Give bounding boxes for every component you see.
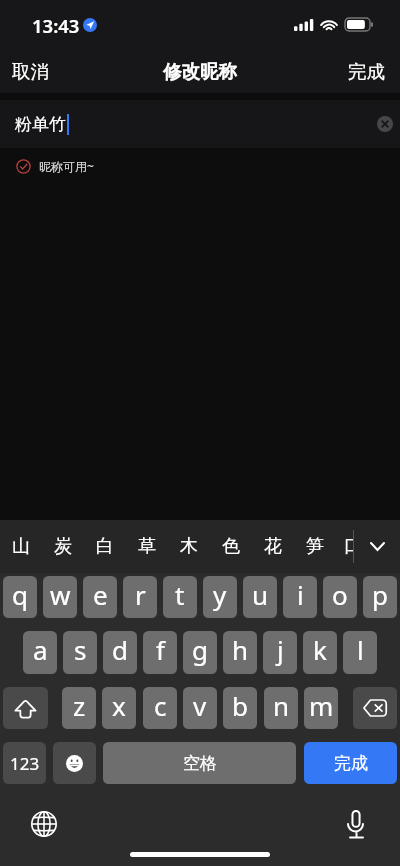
button[interactable]: r xyxy=(123,576,157,618)
staticText: t xyxy=(175,577,185,612)
button[interactable]: Shift xyxy=(3,687,48,729)
button[interactable]: q xyxy=(3,576,37,618)
button[interactable]: 花 xyxy=(252,520,294,573)
button[interactable]: 123 xyxy=(3,742,46,784)
button[interactable]: p xyxy=(363,576,397,618)
staticText: 色 xyxy=(222,535,240,558)
staticText: w xyxy=(50,577,71,612)
staticText: 口 xyxy=(344,535,353,558)
button[interactable]: Clear text xyxy=(377,116,393,132)
button[interactable]: Backspace xyxy=(353,687,397,729)
button[interactable]: k xyxy=(303,631,337,674)
button[interactable]: 空格 xyxy=(103,742,296,784)
staticText: 笋 xyxy=(306,535,324,558)
staticText: h xyxy=(232,632,249,667)
staticText: c xyxy=(154,688,167,723)
staticText: 木 xyxy=(180,535,198,558)
button[interactable]: h xyxy=(223,631,257,674)
button[interactable]: Voice input xyxy=(347,810,366,839)
staticText: 完成 xyxy=(348,60,385,83)
staticText: 花 xyxy=(264,535,282,558)
button[interactable]: d xyxy=(103,631,137,674)
button[interactable]: 炭 xyxy=(42,520,84,573)
staticText: z xyxy=(73,688,86,723)
staticText: 完成 xyxy=(334,753,368,774)
button[interactable]: 色 xyxy=(210,520,252,573)
button[interactable]: Switch keyboard language xyxy=(31,811,57,837)
button[interactable]: x xyxy=(102,687,136,729)
staticText: 昵称可用~ xyxy=(39,158,94,174)
staticText: 13:43 xyxy=(32,13,80,38)
button[interactable]: 白 xyxy=(84,520,126,573)
staticText: 炭 xyxy=(54,535,72,558)
staticText: r xyxy=(135,577,146,612)
button[interactable]: u xyxy=(243,576,277,618)
button[interactable]: g xyxy=(183,631,217,674)
button[interactable]: Expand candidates xyxy=(354,520,400,573)
button[interactable]: 口 xyxy=(336,520,353,573)
staticText: j xyxy=(277,632,284,667)
staticText: 白 xyxy=(96,535,114,558)
staticText: 空格 xyxy=(183,753,217,774)
button[interactable]: 取消 xyxy=(0,48,61,93)
staticText: g xyxy=(192,632,208,667)
staticText: q xyxy=(12,577,28,612)
staticText: n xyxy=(273,688,290,723)
button[interactable]: i xyxy=(283,576,317,618)
staticText: u xyxy=(252,577,269,612)
staticText: p xyxy=(372,577,388,612)
button[interactable]: t xyxy=(163,576,197,618)
button[interactable]: w xyxy=(43,576,77,618)
button[interactable]: 草 xyxy=(126,520,168,573)
button[interactable]: 完成 xyxy=(304,742,397,784)
staticText: k xyxy=(313,632,327,667)
button[interactable]: o xyxy=(323,576,357,618)
button[interactable]: 木 xyxy=(168,520,210,573)
button[interactable]: j xyxy=(263,631,297,674)
staticText: 123 xyxy=(10,752,40,775)
staticText: a xyxy=(33,632,48,667)
button[interactable]: n xyxy=(264,687,298,729)
staticText: b xyxy=(232,688,248,723)
staticText: i xyxy=(297,577,304,612)
staticText: 修改昵称 xyxy=(163,60,237,83)
staticText: 取消 xyxy=(12,60,49,83)
button[interactable]: 笋 xyxy=(294,520,336,573)
staticText: d xyxy=(112,632,128,667)
staticText: v xyxy=(193,688,207,723)
button[interactable]: e xyxy=(83,576,117,618)
button[interactable]: l xyxy=(343,631,377,674)
button[interactable]: b xyxy=(223,687,257,729)
button[interactable]: y xyxy=(203,576,237,618)
staticText: x xyxy=(112,688,126,723)
staticText: s xyxy=(74,632,87,667)
button[interactable]: 山 xyxy=(0,520,42,573)
staticText: f xyxy=(156,632,165,667)
button[interactable]: m xyxy=(304,687,338,729)
button[interactable]: z xyxy=(62,687,96,729)
button[interactable]: v xyxy=(183,687,217,729)
staticText: 草 xyxy=(138,535,156,558)
button[interactable]: f xyxy=(143,631,177,674)
staticText: 山 xyxy=(12,535,30,558)
button[interactable]: s xyxy=(63,631,97,674)
button[interactable]: 完成 xyxy=(333,48,400,93)
button[interactable]: Emoji keyboard xyxy=(53,742,96,784)
staticText: 粉单竹 xyxy=(15,114,66,135)
staticText: y xyxy=(213,577,227,612)
staticText: o xyxy=(332,577,348,612)
staticText: l xyxy=(357,632,364,667)
button[interactable]: a xyxy=(23,631,57,674)
staticText: e xyxy=(93,577,108,612)
button[interactable]: c xyxy=(143,687,177,729)
staticText: m xyxy=(309,688,334,723)
